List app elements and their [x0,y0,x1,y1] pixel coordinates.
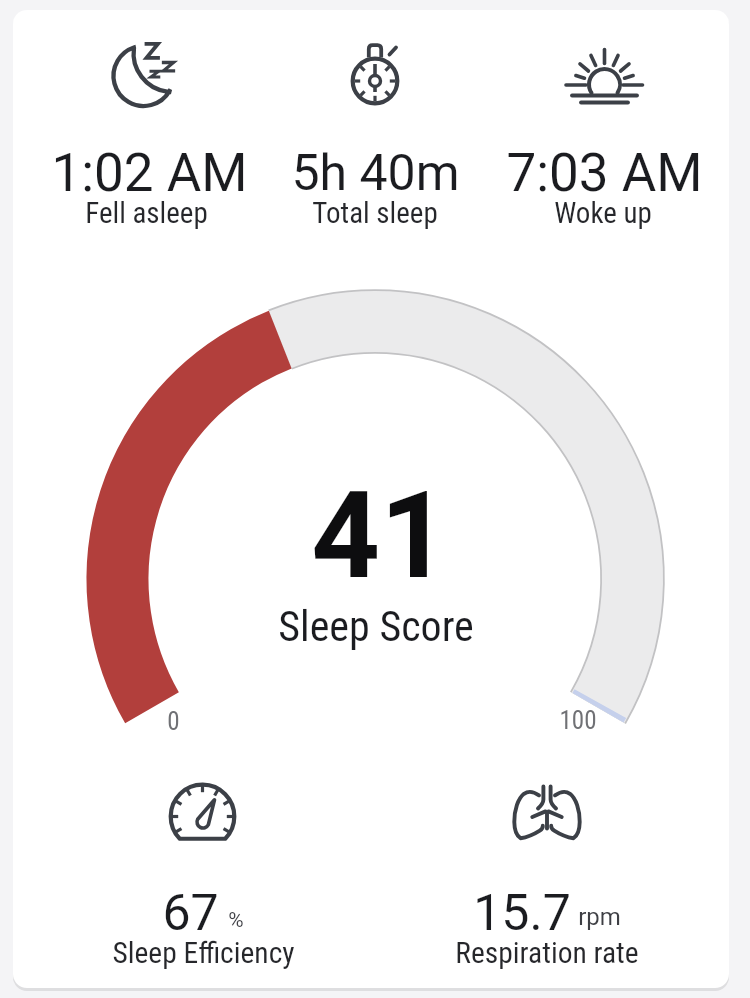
staticText: rpm [578,903,621,931]
staticText: 1:02 AM [51,142,248,204]
staticText: Total sleep [312,196,438,230]
staticText: 67 [162,884,219,943]
staticText: Woke up [554,196,652,230]
staticText: 7:03 AM [506,142,703,204]
staticText: 5h 40m [291,144,460,203]
staticText: 41 [311,466,449,607]
staticText: 0 [167,707,180,736]
staticText: Fell asleep [85,196,208,230]
staticText: 15.7 [473,884,571,943]
button[interactable] [13,10,729,988]
staticText: Respiration rate [455,936,639,971]
staticText: Sleep Score [278,602,474,651]
staticText: Sleep Efficiency [112,936,295,971]
staticText: % [228,908,244,933]
staticText: 100 [559,706,597,735]
